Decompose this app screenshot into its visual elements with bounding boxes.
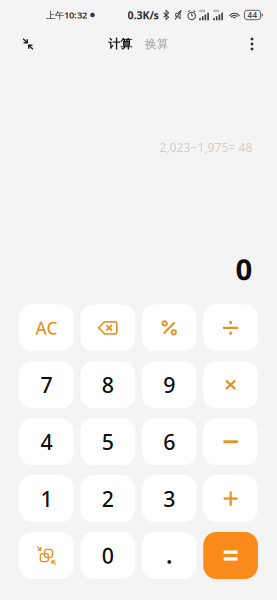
button[interactable]: Minus bbox=[203, 418, 258, 465]
button[interactable]: . bbox=[142, 532, 196, 579]
staticText: AC bbox=[35, 316, 57, 339]
staticText: 2,023−1,975= 48 bbox=[159, 139, 252, 155]
staticText: 0.3K/s bbox=[128, 8, 159, 22]
staticText: 1 bbox=[40, 484, 52, 513]
button[interactable]: 9 bbox=[142, 361, 196, 408]
button[interactable]: Collapse bbox=[13, 31, 43, 57]
staticText: 7 bbox=[40, 371, 52, 399]
button[interactable]: 换算 bbox=[145, 33, 169, 55]
button[interactable]: Percent bbox=[142, 304, 196, 351]
button[interactable]: Divide bbox=[203, 304, 258, 351]
button[interactable]: 6 bbox=[142, 418, 196, 465]
button[interactable]: Scientific mode bbox=[19, 532, 74, 579]
staticText: 5 bbox=[102, 427, 114, 456]
button[interactable]: 2 bbox=[80, 475, 135, 522]
button[interactable]: 1 bbox=[19, 475, 74, 522]
button[interactable]: 7 bbox=[19, 361, 74, 408]
button[interactable]: 3 bbox=[142, 475, 196, 522]
staticText: 44 bbox=[247, 10, 257, 20]
button[interactable]: 8 bbox=[80, 361, 135, 408]
button[interactable]: AC bbox=[19, 304, 74, 351]
button[interactable]: Plus bbox=[203, 475, 258, 522]
staticText: 4 bbox=[40, 427, 52, 456]
staticText: 0 bbox=[235, 249, 252, 288]
staticText: 计算 bbox=[108, 37, 132, 51]
staticText: 6 bbox=[163, 427, 175, 456]
staticText: 2 bbox=[102, 484, 114, 513]
button[interactable]: 4 bbox=[19, 418, 74, 465]
button[interactable]: 0 bbox=[80, 532, 135, 579]
button[interactable]: Backspace bbox=[80, 304, 135, 351]
button[interactable]: 5 bbox=[80, 418, 135, 465]
button[interactable]: More options bbox=[239, 31, 265, 57]
staticText: 8 bbox=[102, 371, 114, 399]
staticText: 上午10:32 bbox=[46, 9, 87, 21]
button[interactable]: Multiply bbox=[203, 361, 258, 408]
staticText: 0 bbox=[102, 541, 114, 570]
button[interactable]: Equals bbox=[203, 532, 258, 579]
staticText: . bbox=[166, 541, 172, 570]
staticText: 换算 bbox=[145, 37, 169, 51]
button[interactable]: 计算 bbox=[108, 33, 132, 55]
staticText: 9 bbox=[163, 371, 175, 399]
staticText: 3 bbox=[163, 484, 175, 513]
